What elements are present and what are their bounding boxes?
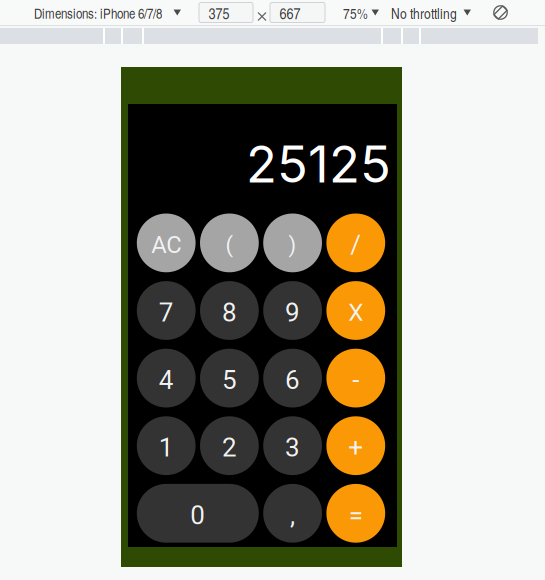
button[interactable]: /: [326, 213, 385, 272]
staticText: 8: [222, 297, 237, 328]
staticText: 25125: [246, 133, 391, 195]
button[interactable]: -: [326, 349, 385, 407]
button[interactable]: 75%: [343, 1, 379, 23]
staticText: 3: [285, 432, 300, 463]
button[interactable]: Dimensions: iPhone 6/7/8: [34, 1, 181, 23]
staticText: 667: [279, 2, 300, 23]
staticText: 9: [285, 297, 300, 328]
staticText: (: [225, 232, 233, 258]
button[interactable]: 2: [200, 416, 259, 475]
staticText: AC: [151, 231, 181, 259]
button[interactable]: 6: [263, 349, 322, 407]
staticText: /: [350, 230, 361, 260]
staticText: Dimensions: iPhone 6/7/8: [34, 3, 162, 23]
button[interactable]: 3: [263, 416, 322, 475]
button[interactable]: +: [326, 416, 385, 475]
button[interactable]: X: [326, 281, 385, 340]
staticText: 1: [159, 432, 174, 463]
staticText: =: [349, 500, 363, 531]
staticText: 5: [222, 365, 237, 395]
staticText: 7: [159, 297, 174, 328]
staticText: 4: [159, 365, 174, 395]
staticText: ): [289, 232, 297, 258]
button[interactable]: (: [200, 213, 259, 272]
staticText: 6: [285, 365, 300, 395]
staticText: No throttling: [391, 3, 457, 23]
button[interactable]: 7: [137, 281, 196, 340]
button[interactable]: Rotate: [489, 1, 511, 23]
button[interactable]: 667: [270, 2, 325, 22]
button[interactable]: 4: [137, 349, 196, 407]
button[interactable]: AC: [137, 213, 196, 272]
button[interactable]: =: [326, 484, 385, 543]
staticText: 0: [190, 500, 205, 531]
button[interactable]: ,: [263, 484, 322, 543]
button[interactable]: 9: [263, 281, 322, 340]
button[interactable]: No throttling: [391, 1, 471, 23]
button[interactable]: ): [263, 213, 322, 272]
staticText: -: [352, 365, 359, 395]
button[interactable]: 0: [137, 484, 259, 543]
button[interactable]: 375: [199, 2, 253, 22]
button[interactable]: 1: [137, 416, 196, 475]
staticText: 75%: [343, 3, 368, 23]
staticText: ,: [290, 500, 295, 531]
button[interactable]: 8: [200, 281, 259, 340]
staticText: X: [348, 298, 363, 327]
staticText: 375: [208, 2, 229, 23]
staticText: 2: [222, 432, 237, 463]
staticText: +: [348, 432, 363, 463]
button[interactable]: 5: [200, 349, 259, 407]
